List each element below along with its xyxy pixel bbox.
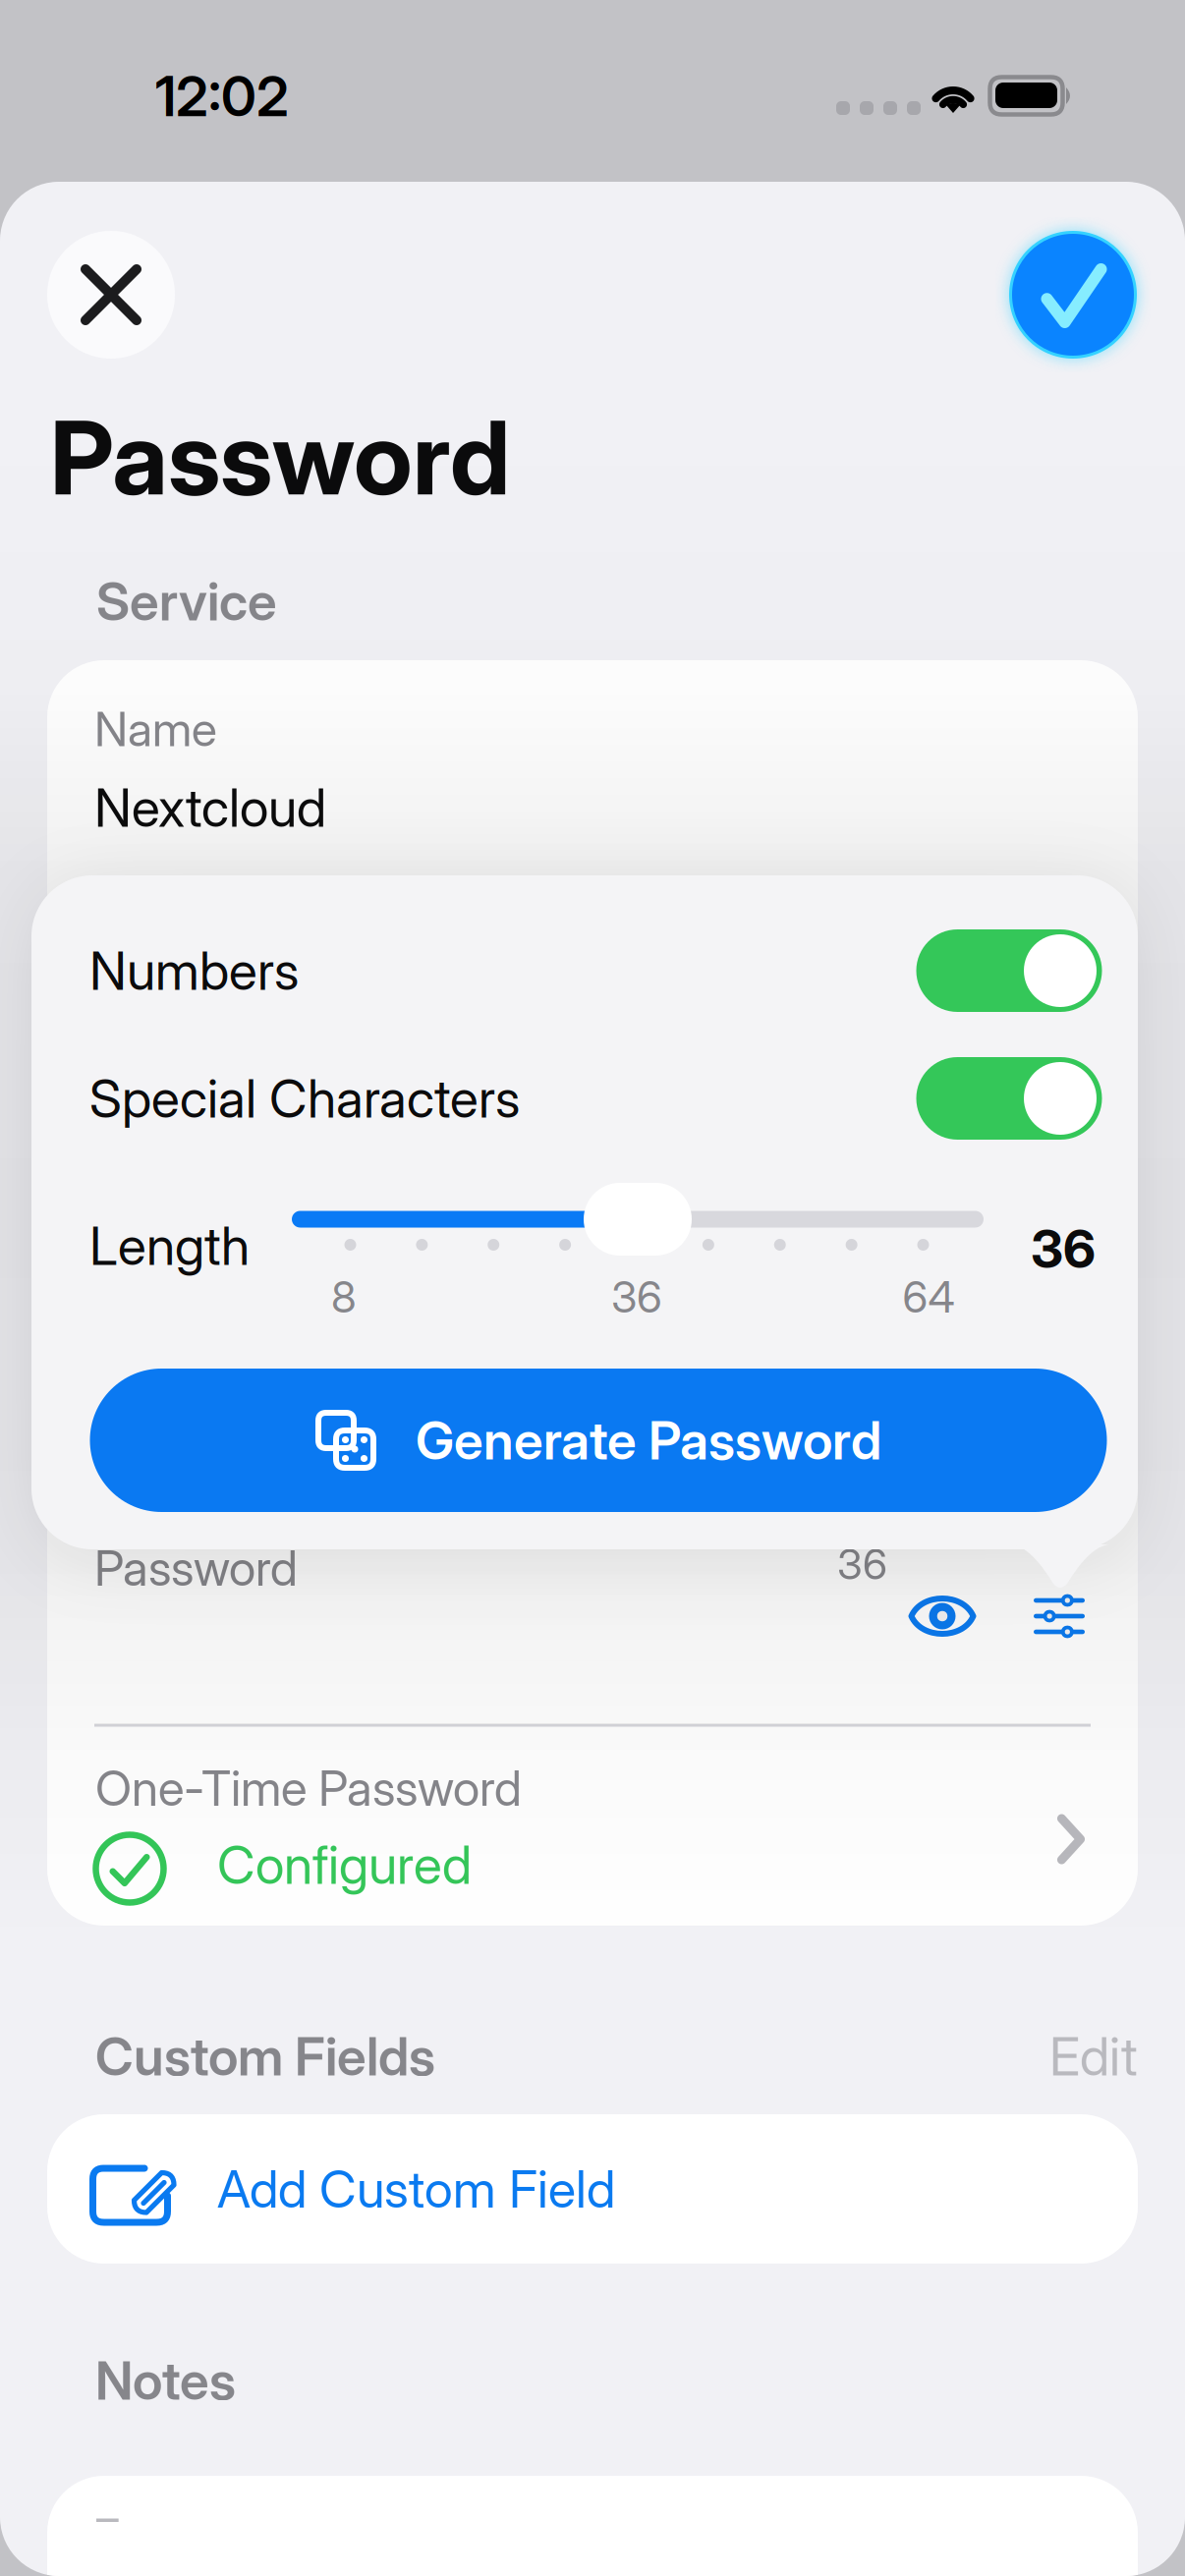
staticText: Generate Password	[416, 1409, 881, 1471]
staticText: Numbers	[89, 940, 299, 1002]
button[interactable]: Save	[1008, 230, 1138, 360]
button[interactable]: Password options	[1008, 1573, 1110, 1659]
button[interactable]: Toggle	[916, 929, 1102, 1012]
button[interactable]: Show password	[891, 1573, 993, 1659]
staticText: Add Custom Field	[217, 2159, 615, 2219]
staticText: 12:02	[155, 64, 289, 129]
staticText: 36	[1031, 1218, 1096, 1280]
staticText: One-Time Password	[95, 1759, 522, 1817]
staticText: Length	[89, 1215, 250, 1277]
button[interactable]: Add Custom Field	[47, 2114, 1138, 2264]
button[interactable]: Close	[47, 231, 175, 359]
staticText: 36	[837, 1539, 887, 1589]
staticText: –	[96, 2491, 119, 2543]
button[interactable]: Toggle	[916, 1057, 1102, 1140]
staticText: Name	[94, 701, 217, 757]
staticText: Configured	[217, 1834, 472, 1896]
staticText: Notes	[95, 2350, 236, 2411]
staticText: Custom Fields	[95, 2025, 435, 2087]
staticText: 64	[903, 1271, 955, 1322]
staticText: Service	[96, 570, 277, 632]
staticText: Edit	[1049, 2025, 1138, 2087]
staticText: Password	[94, 1539, 298, 1597]
staticText: 8	[331, 1271, 357, 1322]
staticText: Special Characters	[89, 1067, 520, 1129]
staticText: Nextcloud	[94, 777, 326, 838]
staticText: 36	[611, 1271, 662, 1322]
button[interactable]: Generate Password	[90, 1369, 1107, 1512]
staticText: Password	[50, 398, 510, 517]
